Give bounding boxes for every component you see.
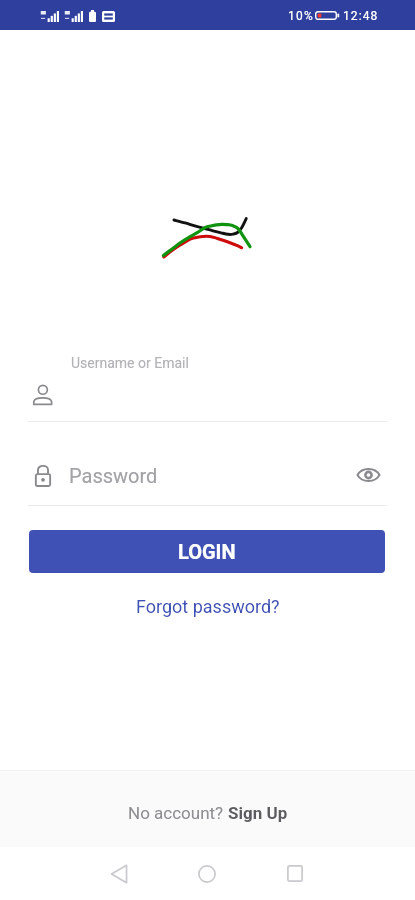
button[interactable]: Forgot password? <box>136 596 280 617</box>
staticText: Password <box>69 464 158 487</box>
staticText: Sign Up <box>228 803 288 823</box>
staticText: LOGIN <box>178 540 236 563</box>
button[interactable]: Show password <box>349 458 387 491</box>
button[interactable]: Home <box>183 847 231 900</box>
staticText: 10% <box>288 9 314 23</box>
staticText: Username or Email <box>71 355 189 371</box>
staticText: 12:48 <box>343 9 379 23</box>
button[interactable]: Recents <box>271 847 319 900</box>
staticText: No account? <box>128 803 228 823</box>
button[interactable]: Back <box>95 847 143 900</box>
button[interactable]: No account? <box>128 803 288 823</box>
button[interactable]: LOGIN <box>29 530 385 573</box>
